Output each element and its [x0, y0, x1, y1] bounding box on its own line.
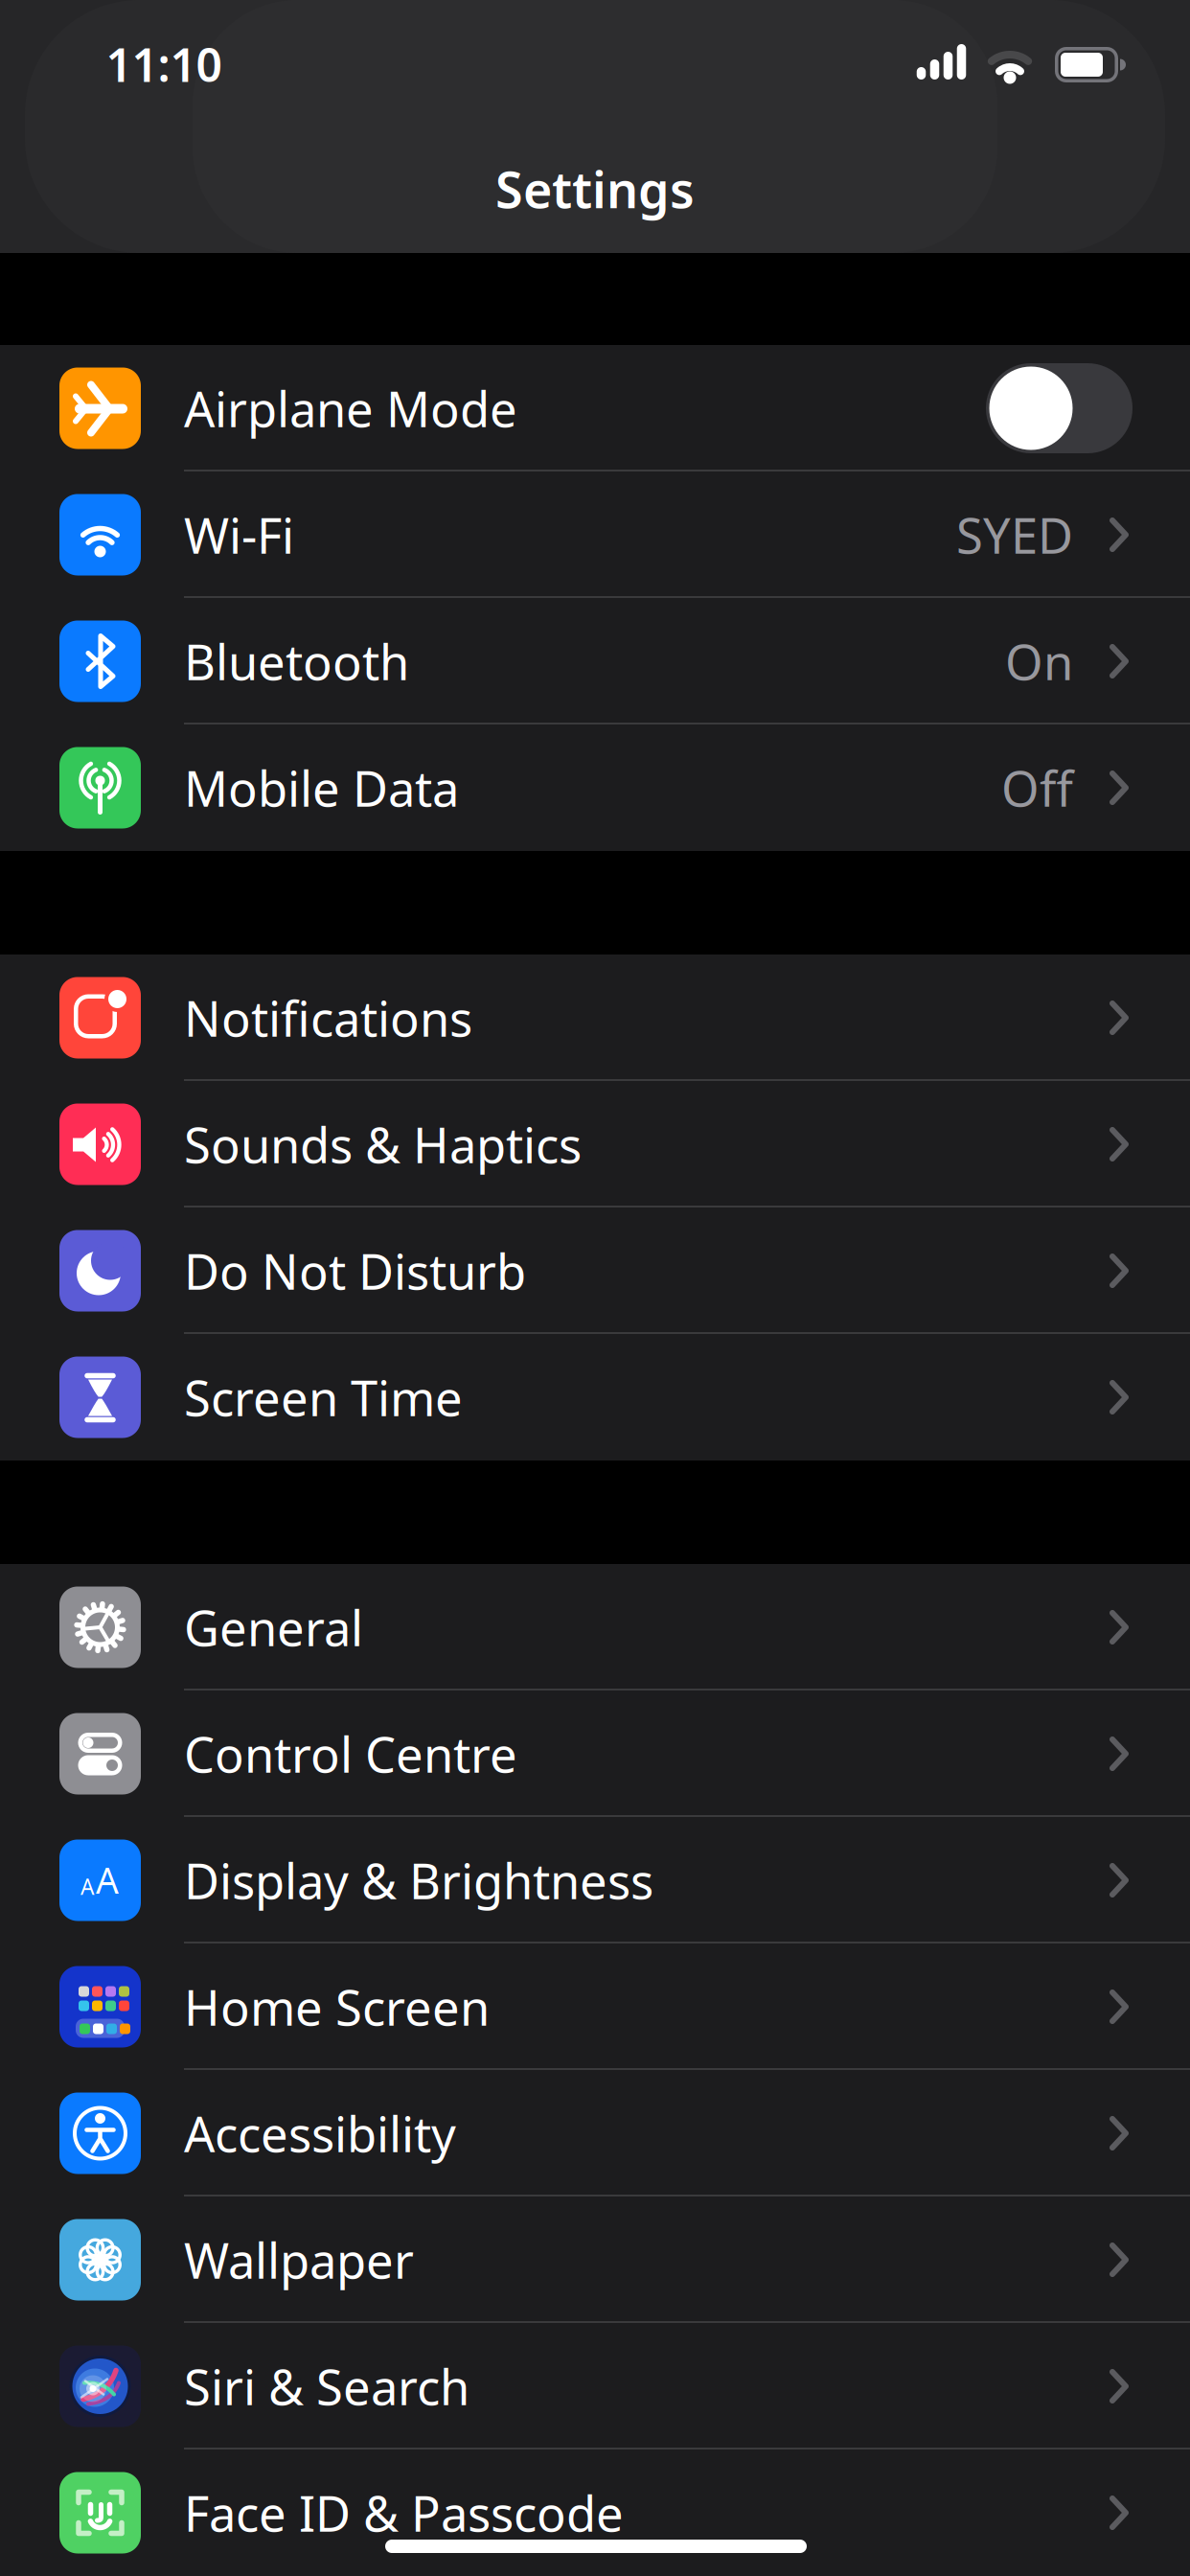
staticText: Accessibility: [184, 2101, 456, 2166]
staticText: A: [96, 1856, 119, 1904]
button[interactable]: Screen Time: [0, 1334, 1190, 1460]
staticText: General: [184, 1595, 363, 1660]
staticText: 11:10: [106, 34, 222, 95]
staticText: Screen Time: [184, 1365, 463, 1430]
staticText: Airplane Mode: [184, 376, 517, 441]
button[interactable]: Airplane Mode: [986, 363, 1133, 453]
staticText: A: [80, 1872, 94, 1901]
button[interactable]: Notifications: [0, 954, 1190, 1081]
staticText: On: [1005, 629, 1073, 694]
staticText: Do Not Disturb: [184, 1239, 526, 1303]
staticText: Settings: [495, 156, 695, 222]
button[interactable]: Wallpaper: [0, 2196, 1190, 2323]
button[interactable]: Control Centre: [0, 1690, 1190, 1817]
button[interactable]: Wi-Fi: [0, 471, 1190, 598]
button[interactable]: Home Screen: [0, 1943, 1190, 2070]
staticText: Sounds & Haptics: [184, 1112, 582, 1177]
staticText: Control Centre: [184, 1722, 517, 1786]
button[interactable]: Do Not Disturb: [0, 1207, 1190, 1334]
staticText: Notifications: [184, 986, 472, 1050]
staticText: SYED: [956, 503, 1073, 567]
staticText: Wi-Fi: [184, 503, 294, 567]
button[interactable]: Mobile Data: [0, 724, 1190, 851]
staticText: Home Screen: [184, 1975, 490, 2039]
staticText: Wallpaper: [184, 2228, 414, 2292]
button[interactable]: General: [0, 1564, 1190, 1690]
staticText: Display & Brightness: [184, 1848, 653, 1913]
button[interactable]: Sounds & Haptics: [0, 1081, 1190, 1207]
staticText: Mobile Data: [184, 756, 459, 820]
staticText: Bluetooth: [184, 629, 409, 694]
staticText: Face ID & Passcode: [184, 2481, 624, 2545]
button[interactable]: A: [0, 1817, 1190, 1943]
button[interactable]: Accessibility: [0, 2070, 1190, 2196]
button[interactable]: Face ID & Passcode: [0, 2449, 1190, 2576]
staticText: Off: [1001, 756, 1073, 820]
button[interactable]: Bluetooth: [0, 598, 1190, 724]
button[interactable]: Siri & Search: [0, 2323, 1190, 2449]
staticText: Siri & Search: [184, 2354, 469, 2419]
